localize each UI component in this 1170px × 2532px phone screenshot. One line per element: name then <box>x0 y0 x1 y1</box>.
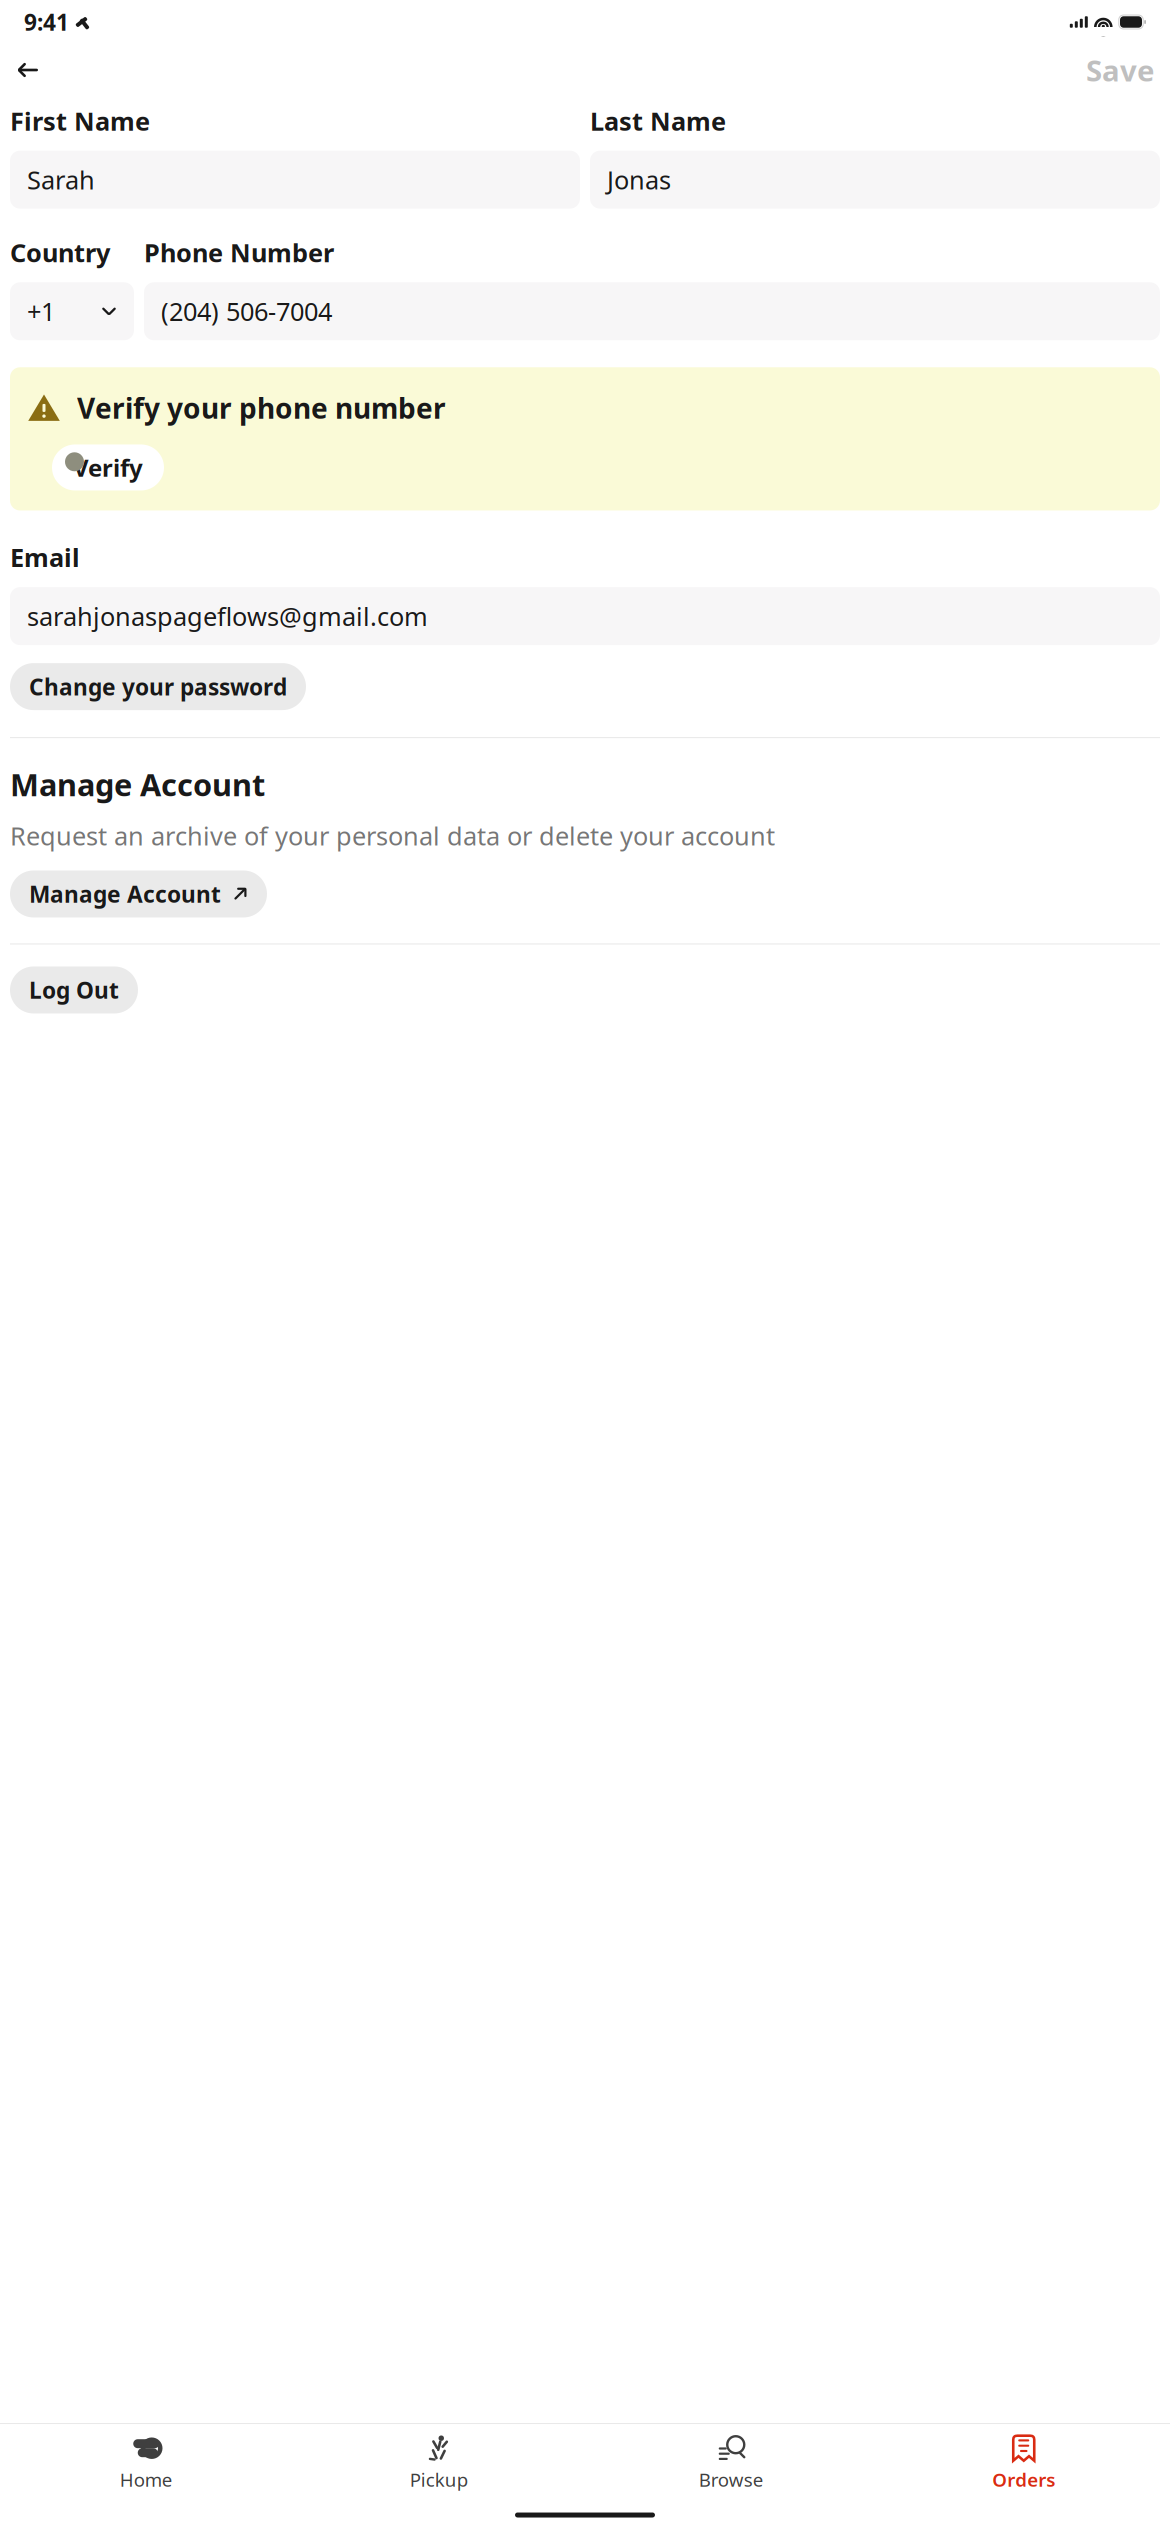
staticText: Country <box>10 236 110 269</box>
button[interactable]: +1 <box>10 282 134 340</box>
staticText: Log Out <box>29 975 119 1005</box>
button[interactable]: Orders <box>877 2424 1170 2498</box>
staticText: First Name <box>10 104 150 138</box>
staticText: Last Name <box>590 104 726 138</box>
button[interactable]: Log Out <box>10 966 138 1013</box>
button[interactable]: Verify <box>52 444 164 490</box>
staticText: Verify <box>73 451 143 483</box>
staticText: Jonas <box>607 163 671 196</box>
button[interactable]: Save <box>1086 48 1155 92</box>
staticText: 9:41 <box>24 7 69 37</box>
staticText: (204) 506-7004 <box>161 294 332 328</box>
button[interactable]: Manage Account <box>10 870 267 917</box>
staticText: Save <box>1086 50 1155 89</box>
staticText: Sarah <box>27 163 95 196</box>
staticText: Phone Number <box>144 236 334 269</box>
staticText: Change your password <box>29 672 287 702</box>
staticText: Pickup <box>410 2467 468 2492</box>
button[interactable]: Pickup <box>292 2424 585 2498</box>
staticText: Browse <box>699 2467 764 2492</box>
staticText: Manage Account <box>10 764 265 805</box>
staticText: sarahjonaspageflows@gmail.com <box>27 599 428 633</box>
button[interactable]: Change your password <box>10 663 306 710</box>
staticText: Request an archive of your personal data… <box>10 819 775 852</box>
staticText: Manage Account <box>29 879 221 909</box>
button[interactable]: Browse <box>585 2424 877 2498</box>
button[interactable]: Home <box>0 2424 292 2498</box>
button[interactable]: Back <box>15 48 59 92</box>
staticText: +1 <box>27 294 55 328</box>
staticText: Email <box>10 540 80 574</box>
staticText: Orders <box>992 2467 1055 2492</box>
staticText: Verify your phone number <box>77 389 446 426</box>
staticText: Home <box>120 2467 173 2492</box>
